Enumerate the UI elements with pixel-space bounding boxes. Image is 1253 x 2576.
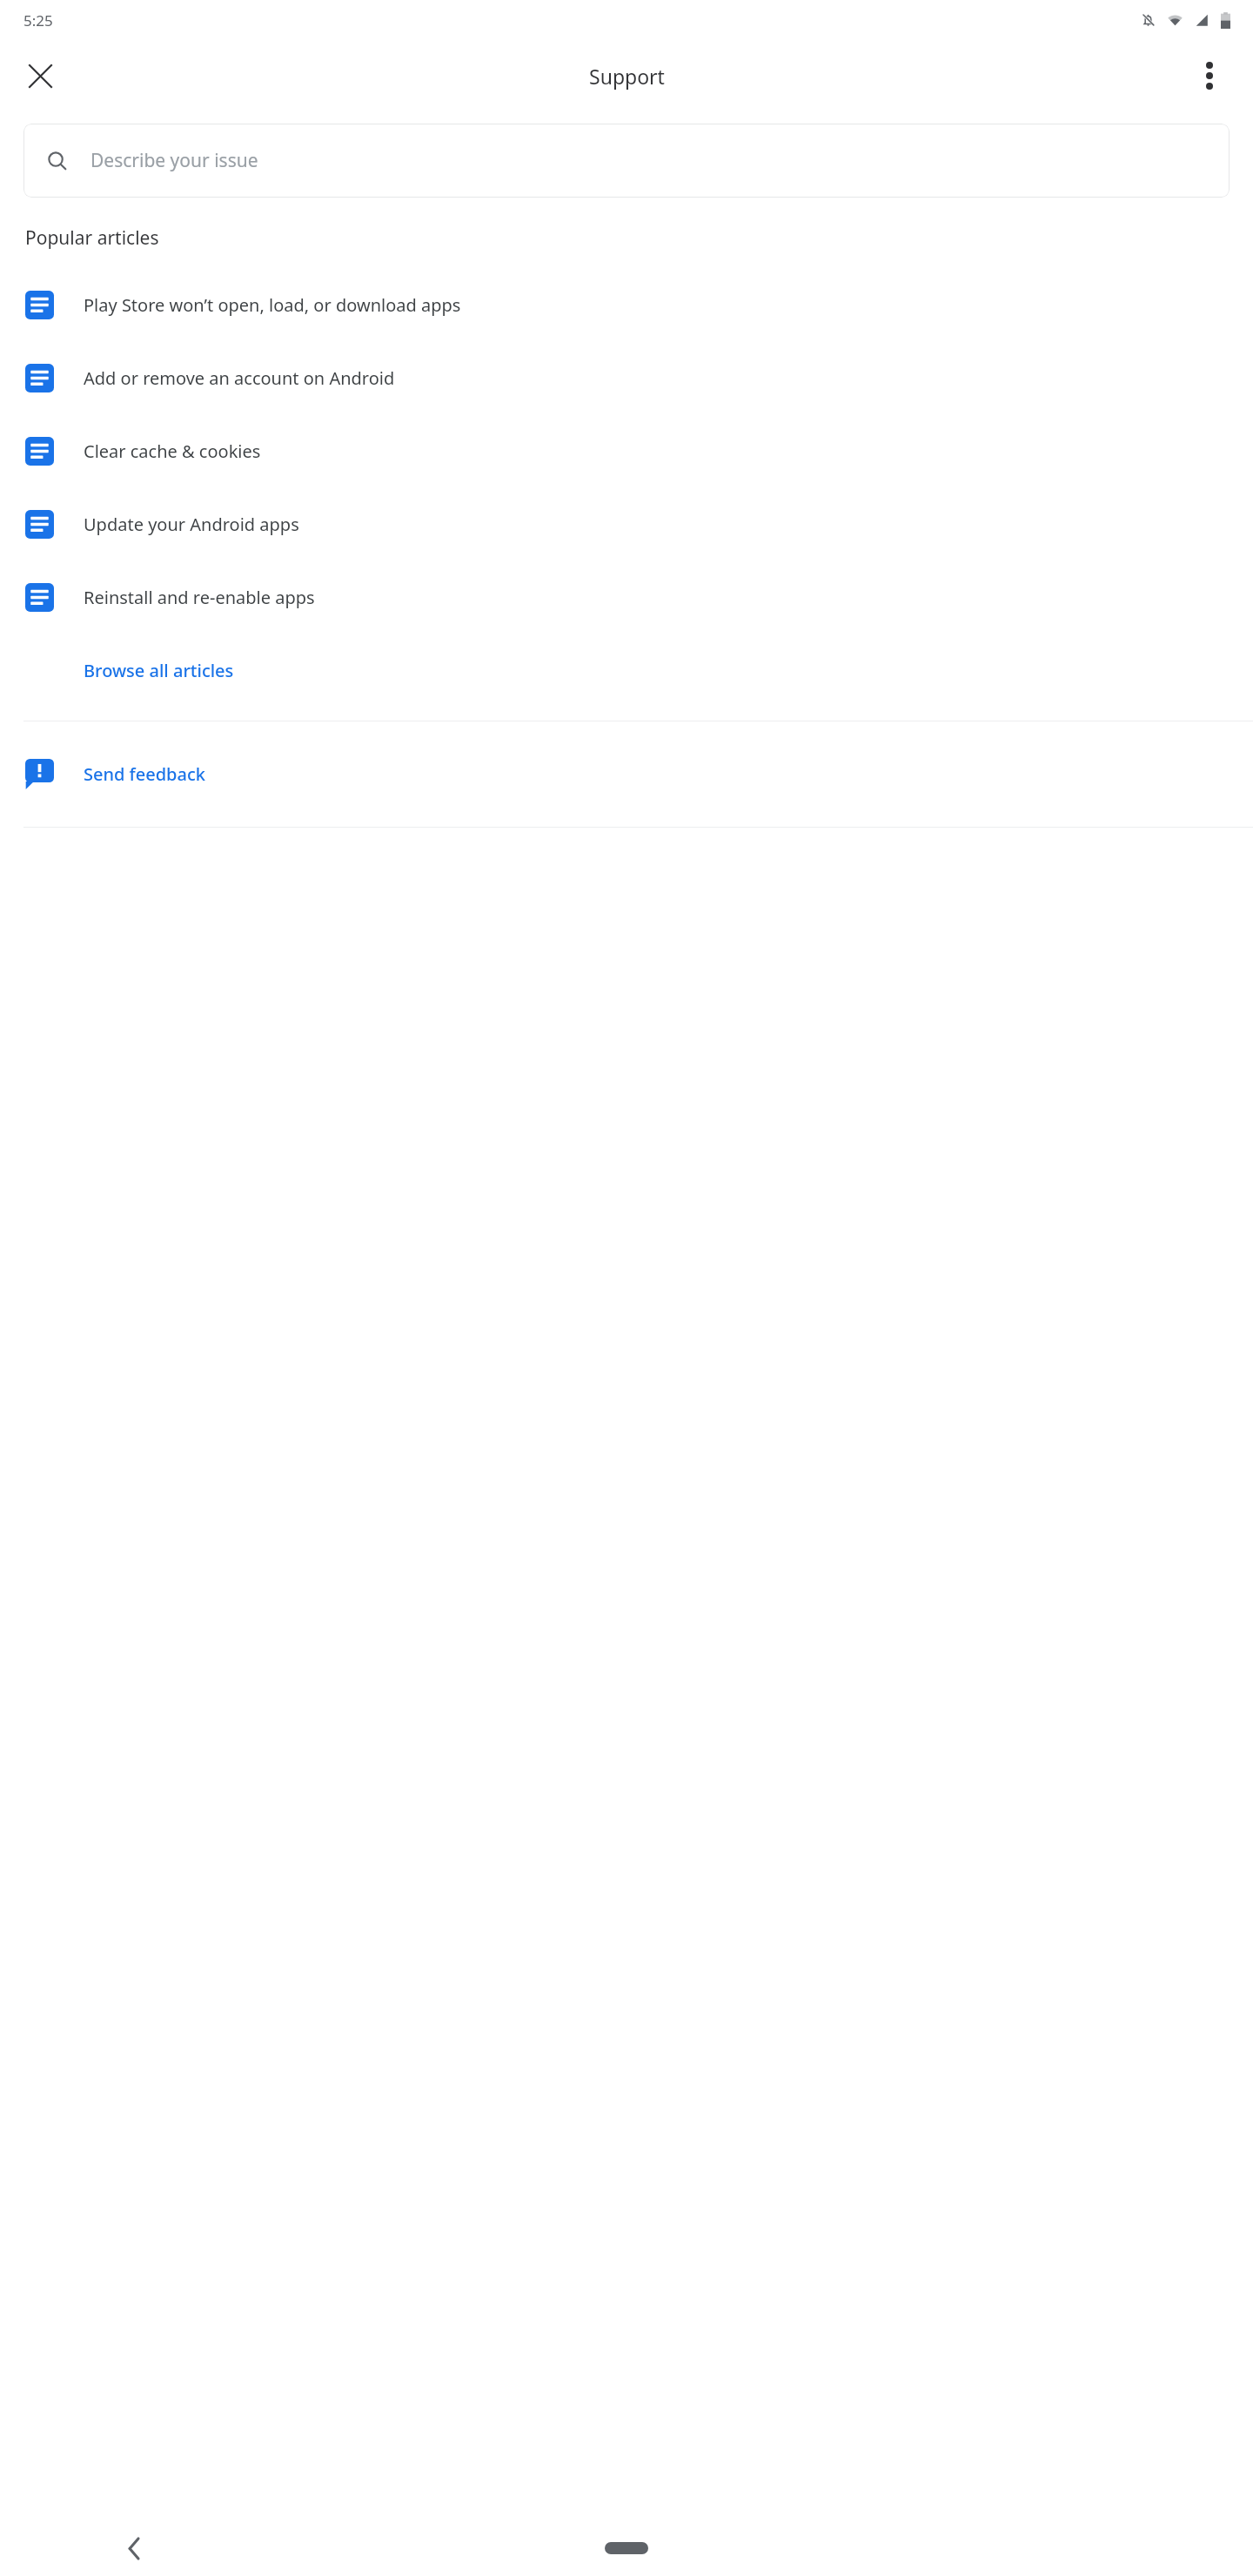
staticText: Update your Android apps: [84, 513, 299, 536]
button[interactable]: Back: [114, 2529, 152, 2567]
button[interactable]: Clear cache & cookies: [0, 414, 1253, 487]
button[interactable]: Home: [605, 2542, 648, 2554]
staticText: Send feedback: [84, 762, 205, 786]
button[interactable]: Update your Android apps: [0, 487, 1253, 560]
staticText: Browse all articles: [84, 659, 234, 682]
button[interactable]: Close: [16, 51, 64, 100]
button[interactable]: Describe your issue: [23, 124, 1230, 198]
staticText: Clear cache & cookies: [84, 439, 261, 463]
staticText: Support: [589, 63, 665, 90]
button[interactable]: Browse all articles: [0, 634, 1253, 707]
staticText: Play Store won’t open, load, or download…: [84, 293, 461, 317]
staticText: Add or remove an account on Android: [84, 366, 395, 390]
button[interactable]: Send feedback: [0, 721, 1253, 827]
button[interactable]: More options: [1185, 51, 1234, 100]
button[interactable]: Reinstall and re-enable apps: [0, 560, 1253, 634]
button[interactable]: Play Store won’t open, load, or download…: [0, 268, 1253, 341]
staticText: Popular articles: [25, 225, 159, 251]
staticText: Reinstall and re-enable apps: [84, 586, 315, 609]
staticText: Describe your issue: [90, 148, 258, 173]
button[interactable]: Add or remove an account on Android: [0, 341, 1253, 414]
staticText: 5:25: [23, 10, 53, 30]
